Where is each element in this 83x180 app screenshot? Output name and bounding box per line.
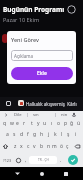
staticText: e [16,120,19,127]
staticText: k [54,131,57,138]
staticText: w [10,120,14,127]
staticText: u [43,120,47,127]
button[interactable]: o [56,118,61,129]
button[interactable] [2,111,9,118]
button[interactable]: ö [59,141,64,152]
staticText: Halkalık akışverniş Kârlı [26,101,77,107]
staticText: Açıklama [14,53,34,59]
staticText: Bugünün Programı [3,5,65,14]
button[interactable]: c [26,141,31,152]
button[interactable]: ş [66,129,71,140]
button[interactable]: ü [76,118,81,129]
staticText: , [25,157,27,164]
button[interactable]: Home [35,167,48,180]
staticText: ö [60,143,64,150]
button[interactable]: nin [55,111,73,118]
staticText: v [33,143,36,150]
button[interactable]: Sticker [18,100,24,106]
staticText: i [75,131,77,138]
button[interactable]: ?123 [1,153,13,167]
staticText: ı [51,120,53,127]
staticText: g [33,131,37,138]
staticText: h [40,131,44,138]
button[interactable]: b [39,141,44,152]
staticText: f [27,131,29,138]
staticText: t [31,120,33,127]
button[interactable]: y [36,118,41,129]
button[interactable]: Emoji [14,153,23,167]
staticText: TR - ÇH [38,158,49,162]
staticText: x [20,143,23,150]
button[interactable]: r [22,118,27,129]
staticText: n [47,143,51,150]
button[interactable]: Enter [68,155,78,165]
button[interactable]: x [19,141,24,152]
button[interactable]: ğ [69,118,74,129]
button[interactable]: Backspace [73,141,82,152]
button[interactable]: Shift [1,141,10,152]
button[interactable]: Back [11,167,24,180]
button[interactable]: , [23,153,29,167]
staticText: sın [33,112,39,118]
staticText: d [20,131,24,138]
button[interactable]: n [46,141,51,152]
staticText: . [60,157,62,164]
staticText: p [64,120,68,127]
staticText: Dile [14,112,22,118]
button[interactable]: s [12,129,17,140]
button[interactable]: q [2,118,7,129]
staticText: l [61,131,63,138]
button[interactable]: g [32,129,37,140]
button[interactable]: i [73,129,78,140]
button[interactable]: h [39,129,44,140]
button[interactable]: Voice input [71,112,77,118]
staticText: c [27,143,30,150]
button[interactable]: d [19,129,24,140]
button[interactable]: f [25,129,30,140]
button[interactable]: w [9,118,14,129]
staticText: Yeni Görev [11,36,39,43]
staticText: a [6,131,9,138]
button[interactable]: Recents [59,167,72,180]
button[interactable]: ı [49,118,54,129]
staticText: j [48,131,50,138]
button[interactable]: Profile [66,4,77,15]
button[interactable]: Dile [9,111,27,118]
button[interactable]: ç [65,141,70,152]
staticText: Pazar 10 Ekim [3,16,40,23]
button[interactable]: j [46,129,51,140]
staticText: ç [66,143,69,150]
staticText: ş [67,131,70,138]
button[interactable]: m [52,141,57,152]
button[interactable]: . [58,153,64,167]
staticText: z [14,143,17,150]
button[interactable]: t [29,118,34,129]
staticText: ?123 [3,158,12,163]
button[interactable]: Ekle [11,67,73,80]
staticText: nin [61,112,68,118]
staticText: s [13,131,16,138]
button[interactable]: k [53,129,58,140]
button[interactable]: e [15,118,20,129]
staticText: b [40,143,44,150]
button[interactable]: Clipboard [6,101,11,106]
button[interactable]: Açıklama [11,50,73,61]
staticText: ğ [70,120,74,127]
button[interactable]: l [59,129,64,140]
button[interactable]: u [42,118,47,129]
button[interactable]: p [63,118,68,129]
staticText: Ekle [37,70,47,77]
staticText: o [57,120,61,127]
button[interactable]: Space [29,156,57,164]
staticText: q [3,120,7,127]
staticText: y [37,120,40,127]
staticText: r [23,120,26,127]
button[interactable]: v [32,141,37,152]
button[interactable]: a [5,129,10,140]
button[interactable]: sın [27,111,45,118]
staticText: m [52,143,57,150]
staticText: ü [77,120,81,127]
button[interactable]: z [13,141,18,152]
